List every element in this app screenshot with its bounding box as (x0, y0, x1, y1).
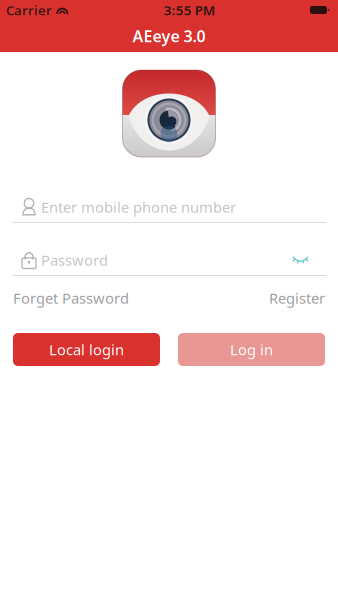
staticText: Register (269, 288, 325, 308)
button[interactable]: Local login (13, 333, 160, 366)
staticText: Carrier (6, 1, 52, 19)
staticText: Enter mobile phone number (41, 197, 236, 217)
staticText: AEeye 3.0 (132, 25, 205, 47)
button[interactable]: Forget Password (13, 284, 129, 312)
staticText: Local login (49, 340, 124, 359)
staticText: Forget Password (13, 288, 129, 308)
staticText: Password (41, 250, 108, 270)
button[interactable]: Log in (178, 333, 325, 366)
button[interactable]: Register (269, 284, 325, 312)
staticText: 3:55 PM (164, 1, 215, 19)
staticText: Log in (230, 340, 273, 359)
button[interactable]: Show password (288, 248, 326, 272)
